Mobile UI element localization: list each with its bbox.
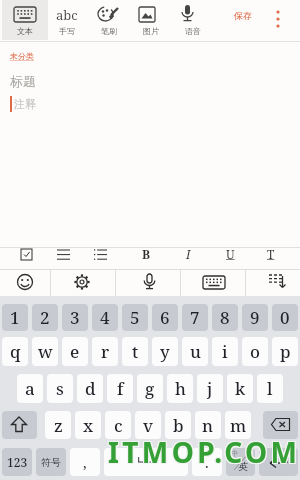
staticText: I [186, 246, 191, 262]
button[interactable] [259, 448, 298, 476]
staticText: 3 [70, 306, 80, 329]
staticText: q [10, 340, 21, 363]
button[interactable] [21, 249, 33, 261]
staticText: 笔刷 [101, 26, 117, 36]
button[interactable]: 5 [122, 304, 148, 331]
button[interactable]: i [212, 337, 238, 366]
button[interactable]: 4 [92, 304, 118, 331]
staticText: B [142, 246, 151, 262]
staticText: ITMOP.COM [107, 434, 300, 472]
staticText: T [267, 246, 275, 262]
staticText: 英 [238, 460, 248, 473]
button[interactable]: x [75, 411, 101, 439]
button[interactable] [74, 274, 90, 290]
staticText: 7 [190, 306, 200, 329]
button[interactable]: d [77, 374, 103, 403]
button[interactable]: 0 [272, 304, 298, 331]
staticText: e [70, 340, 80, 363]
button[interactable]: c [105, 411, 131, 439]
button[interactable]: z [45, 411, 71, 439]
button[interactable]: 6 [152, 304, 178, 331]
button[interactable]: n [195, 411, 221, 439]
staticText: v [143, 414, 153, 437]
button[interactable]: 未分类 [10, 51, 34, 61]
staticText: ITMOP.COM [109, 433, 300, 471]
button[interactable]: 1 [2, 304, 28, 331]
staticText: . [205, 453, 209, 472]
staticText: 8 [220, 306, 230, 329]
staticText: z [54, 414, 63, 437]
button[interactable]: 符号 [36, 448, 66, 476]
button[interactable]: q [2, 337, 28, 366]
staticText: 保存 [234, 10, 252, 21]
button[interactable]: y [152, 337, 178, 366]
staticText: g [145, 377, 155, 400]
button[interactable]: m [225, 411, 251, 439]
button[interactable] [57, 249, 70, 261]
button[interactable]: h [167, 374, 193, 403]
staticText: 未分类 [10, 51, 34, 61]
staticText: x [83, 414, 94, 437]
button[interactable] [94, 249, 107, 261]
staticText: ITMOP.COM [109, 434, 300, 472]
staticText: , [83, 453, 87, 472]
staticText: m [230, 414, 247, 437]
button[interactable]: w [32, 337, 58, 366]
button[interactable]: 123 [2, 448, 32, 476]
button[interactable]: 2 [32, 304, 58, 331]
button[interactable] [269, 274, 286, 290]
staticText: 符号 [41, 456, 61, 469]
button[interactable]: a [17, 374, 43, 403]
button[interactable]: p [272, 337, 298, 366]
staticText: ITMOP.COM [107, 432, 300, 470]
button[interactable]: B [139, 245, 153, 263]
button[interactable] [226, 448, 255, 476]
button[interactable]: k [227, 374, 253, 403]
staticText: ITMOP.COM [109, 432, 300, 470]
button[interactable] [203, 276, 225, 289]
button[interactable]: U [223, 245, 237, 263]
button[interactable] [2, 0, 48, 40]
button[interactable]: t [122, 337, 148, 366]
button[interactable]: 3 [62, 304, 88, 331]
staticText: u [190, 340, 201, 363]
button[interactable]: T [264, 245, 278, 263]
staticText: t [132, 340, 139, 363]
staticText: l [267, 377, 273, 400]
staticText: d [85, 377, 96, 400]
button[interactable]: 保存 [234, 10, 252, 21]
button[interactable]: r [92, 337, 118, 366]
button[interactable]: v [135, 411, 161, 439]
staticText: 6 [160, 306, 170, 329]
button[interactable]: I [181, 245, 195, 263]
button[interactable]: , [70, 448, 100, 476]
button[interactable]: e [62, 337, 88, 366]
button[interactable] [263, 411, 298, 439]
button[interactable]: u [182, 337, 208, 366]
button[interactable]: g [137, 374, 163, 403]
button[interactable]: . [192, 448, 222, 476]
button[interactable] [104, 448, 188, 476]
staticText: w [38, 340, 53, 363]
button[interactable]: f [107, 374, 133, 403]
button[interactable]: o [242, 337, 268, 366]
staticText: 文本 [17, 26, 33, 36]
staticText: 2 [40, 306, 50, 329]
staticText: 标题 [10, 73, 36, 89]
button[interactable] [270, 6, 286, 32]
staticText: r [101, 340, 110, 363]
button[interactable]: j [197, 374, 223, 403]
button[interactable]: l [257, 374, 283, 403]
staticText: p [280, 340, 291, 363]
button[interactable]: 8 [212, 304, 238, 331]
staticText: ITMOP.COM [108, 433, 300, 471]
staticText: c [114, 414, 123, 437]
button[interactable] [17, 274, 33, 290]
staticText: ITMOP.COM [108, 434, 300, 472]
button[interactable] [139, 270, 159, 296]
button[interactable] [2, 411, 37, 439]
button[interactable]: b [165, 411, 191, 439]
button[interactable]: 9 [242, 304, 268, 331]
button[interactable]: s [47, 374, 73, 403]
button[interactable]: 7 [182, 304, 208, 331]
